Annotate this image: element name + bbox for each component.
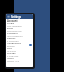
button[interactable]: Email <box>6 27 33 32</box>
staticText: Notifications <box>7 42 22 45</box>
staticText: Password <box>7 32 18 35</box>
staticText: john@mail.com <box>7 30 22 32</box>
staticText: Settings <box>11 15 22 19</box>
staticText: Profile <box>7 22 15 25</box>
staticText: Last changed 2d <box>7 35 23 37</box>
staticText: Enabled <box>7 45 15 47</box>
button[interactable]: Password <box>6 32 33 37</box>
staticText: Email <box>7 27 14 30</box>
staticText: About <box>7 57 14 60</box>
button[interactable]: About <box>6 57 33 62</box>
staticText: 4.2 GB used <box>7 55 19 57</box>
staticText: Account <box>7 19 18 22</box>
staticText: Storage <box>7 52 16 55</box>
button[interactable]: Menu <box>7 15 10 18</box>
staticText: Version 1.2.3 <box>7 60 20 62</box>
button[interactable]: Devices <box>6 37 33 42</box>
staticText: Sync <box>7 47 13 50</box>
staticText: Wi-Fi only <box>7 50 17 52</box>
staticText: Devices <box>7 37 16 40</box>
button[interactable]: Notifications <box>6 42 33 47</box>
button[interactable]: Storage <box>6 52 33 57</box>
staticText: John Appleseed <box>7 25 22 27</box>
staticText: 3 connected <box>7 40 19 42</box>
button[interactable]: Profile <box>6 22 33 27</box>
button[interactable]: Sync <box>6 47 33 52</box>
